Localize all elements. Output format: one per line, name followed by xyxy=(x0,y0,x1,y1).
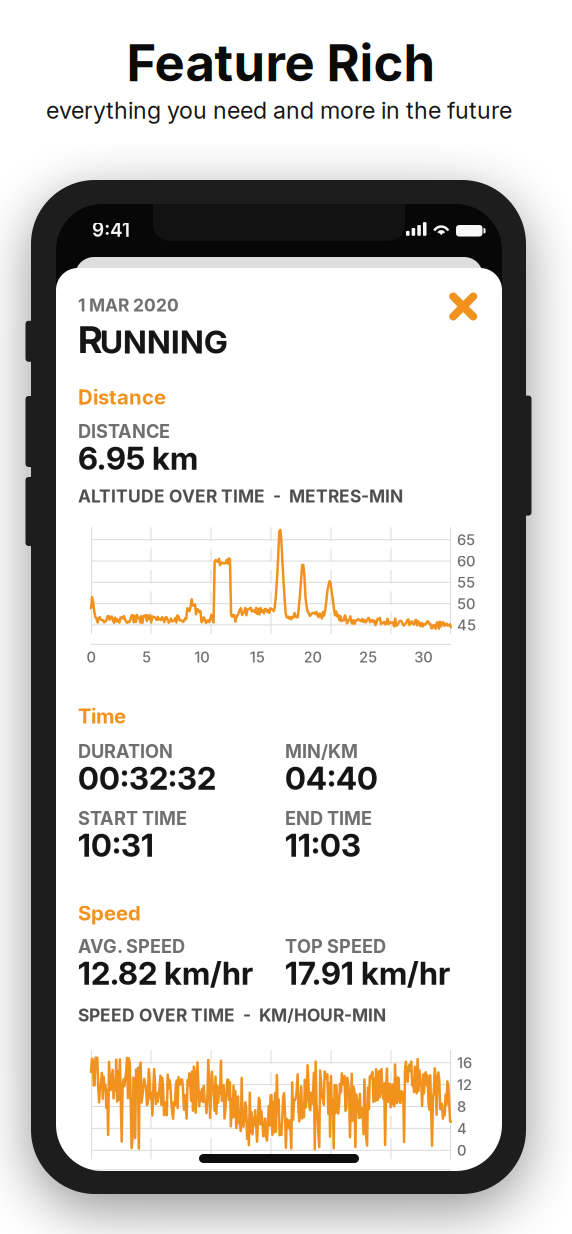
staticText: 0 xyxy=(457,1142,466,1159)
staticText: 6.95 km xyxy=(78,439,198,477)
staticText: 25 xyxy=(359,648,377,666)
staticText: 1 MAR 2020 xyxy=(78,295,179,316)
staticText: R xyxy=(78,316,103,362)
staticText: 10 xyxy=(194,648,209,666)
staticText: 20 xyxy=(303,648,321,666)
button[interactable]: Close xyxy=(441,284,485,328)
staticText: 17.91 km/hr xyxy=(285,954,450,992)
staticText: Time xyxy=(78,704,126,728)
staticText: 12.82 km/hr xyxy=(78,954,253,992)
staticText: END TIME xyxy=(285,807,372,829)
staticText: 30 xyxy=(414,648,432,666)
staticText: DISTANCE xyxy=(78,420,170,442)
staticText: 04:40 xyxy=(285,759,378,797)
staticText: TOP SPEED xyxy=(285,935,386,957)
staticText: everything you need and more in the futu… xyxy=(46,96,512,124)
staticText: Speed xyxy=(78,901,141,925)
staticText: 4 xyxy=(457,1120,467,1137)
staticText: MIN/KM xyxy=(285,740,358,762)
staticText: 8 xyxy=(457,1098,466,1116)
staticText: SPEED OVER TIME - KM/HOUR-MIN xyxy=(78,1005,386,1026)
staticText: 00:32:32 xyxy=(78,759,216,797)
staticText: 16 xyxy=(457,1054,472,1072)
staticText: 10:31 xyxy=(78,826,154,864)
staticText: 15 xyxy=(250,648,265,666)
staticText: 45 xyxy=(457,616,476,634)
staticText: 0 xyxy=(86,648,95,666)
staticText: ALTITUDE OVER TIME - METRES-MIN xyxy=(78,486,403,507)
staticText: 9:41 xyxy=(92,218,130,241)
staticText: 5 xyxy=(142,648,151,666)
staticText: 50 xyxy=(457,595,475,613)
staticText: 60 xyxy=(457,552,475,570)
staticText: Feature Rich xyxy=(126,32,435,93)
staticText: 12 xyxy=(457,1076,472,1094)
staticText: 11:03 xyxy=(285,826,361,864)
staticText: UNNING xyxy=(100,322,228,361)
staticText: 55 xyxy=(457,574,475,591)
staticText: AVG. SPEED xyxy=(78,935,185,957)
staticText: Distance xyxy=(78,385,166,409)
staticText: START TIME xyxy=(78,807,187,829)
staticText: DURATION xyxy=(78,740,173,762)
staticText: 65 xyxy=(457,531,475,549)
